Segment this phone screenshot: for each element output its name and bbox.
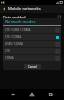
button[interactable]: Back — [7, 89, 19, 100]
button[interactable]: Home — [26, 89, 38, 100]
staticText: Network modes — [5, 19, 36, 24]
staticText: LTE / GSM / CDMA — [5, 28, 56, 32]
button[interactable]: Data enabled — [3, 15, 61, 20]
button[interactable]: Cancel — [24, 64, 41, 69]
button[interactable]: LTE — [3, 48, 61, 54]
staticText: Enable data access over mobile network — [3, 20, 50, 23]
staticText: Mobile networks — [8, 6, 41, 12]
button[interactable]: Recent apps — [45, 89, 57, 100]
button[interactable]: Navigate up — [0, 5, 8, 13]
staticText: GSM / CDMA — [5, 42, 56, 46]
button[interactable]: LTE / CDMA — [3, 34, 61, 40]
button[interactable]: GSM / CDMA — [3, 41, 61, 47]
staticText: CDMA — [5, 56, 56, 60]
staticText: Data enabled — [3, 15, 26, 20]
staticText: Cancel — [28, 65, 37, 69]
button[interactable]: LTE / GSM / CDMA — [3, 27, 61, 33]
staticText: LTE / CDMA — [5, 35, 56, 39]
button[interactable]: CDMA — [3, 55, 61, 61]
staticText: LTE — [5, 49, 56, 53]
